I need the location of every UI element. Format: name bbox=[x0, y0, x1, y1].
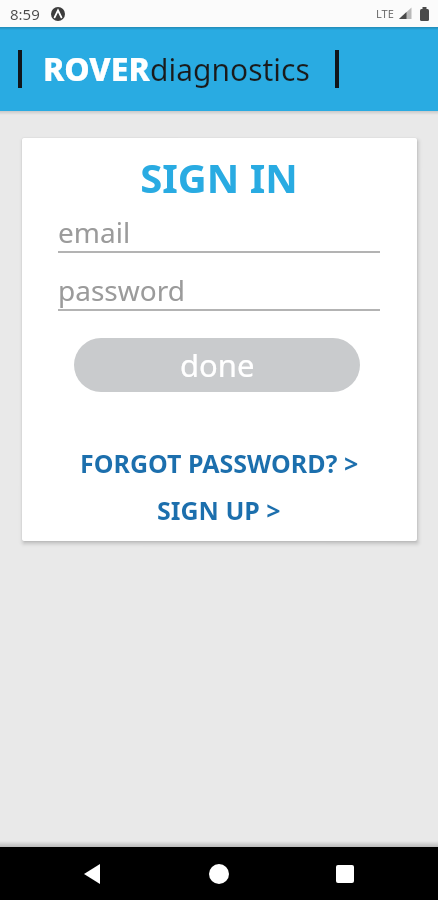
staticText: SIGN IN bbox=[58, 150, 380, 204]
staticText: LTE bbox=[376, 6, 394, 21]
button[interactable]: done bbox=[74, 338, 360, 392]
staticText: password bbox=[58, 271, 185, 309]
button[interactable]: FORGOT PASSWORD? > bbox=[58, 446, 380, 480]
staticText: diagnostics bbox=[150, 49, 310, 90]
staticText: email bbox=[58, 213, 131, 251]
button[interactable] bbox=[195, 847, 243, 900]
button[interactable] bbox=[321, 847, 369, 900]
button[interactable] bbox=[68, 847, 116, 900]
staticText: ROVER bbox=[43, 47, 150, 91]
staticText: SIGN UP > bbox=[157, 493, 281, 527]
staticText: FORGOT PASSWORD? > bbox=[80, 446, 359, 480]
button[interactable]: SIGN UP > bbox=[58, 493, 380, 527]
staticText: 8:59 bbox=[10, 4, 40, 24]
staticText: done bbox=[180, 344, 255, 386]
